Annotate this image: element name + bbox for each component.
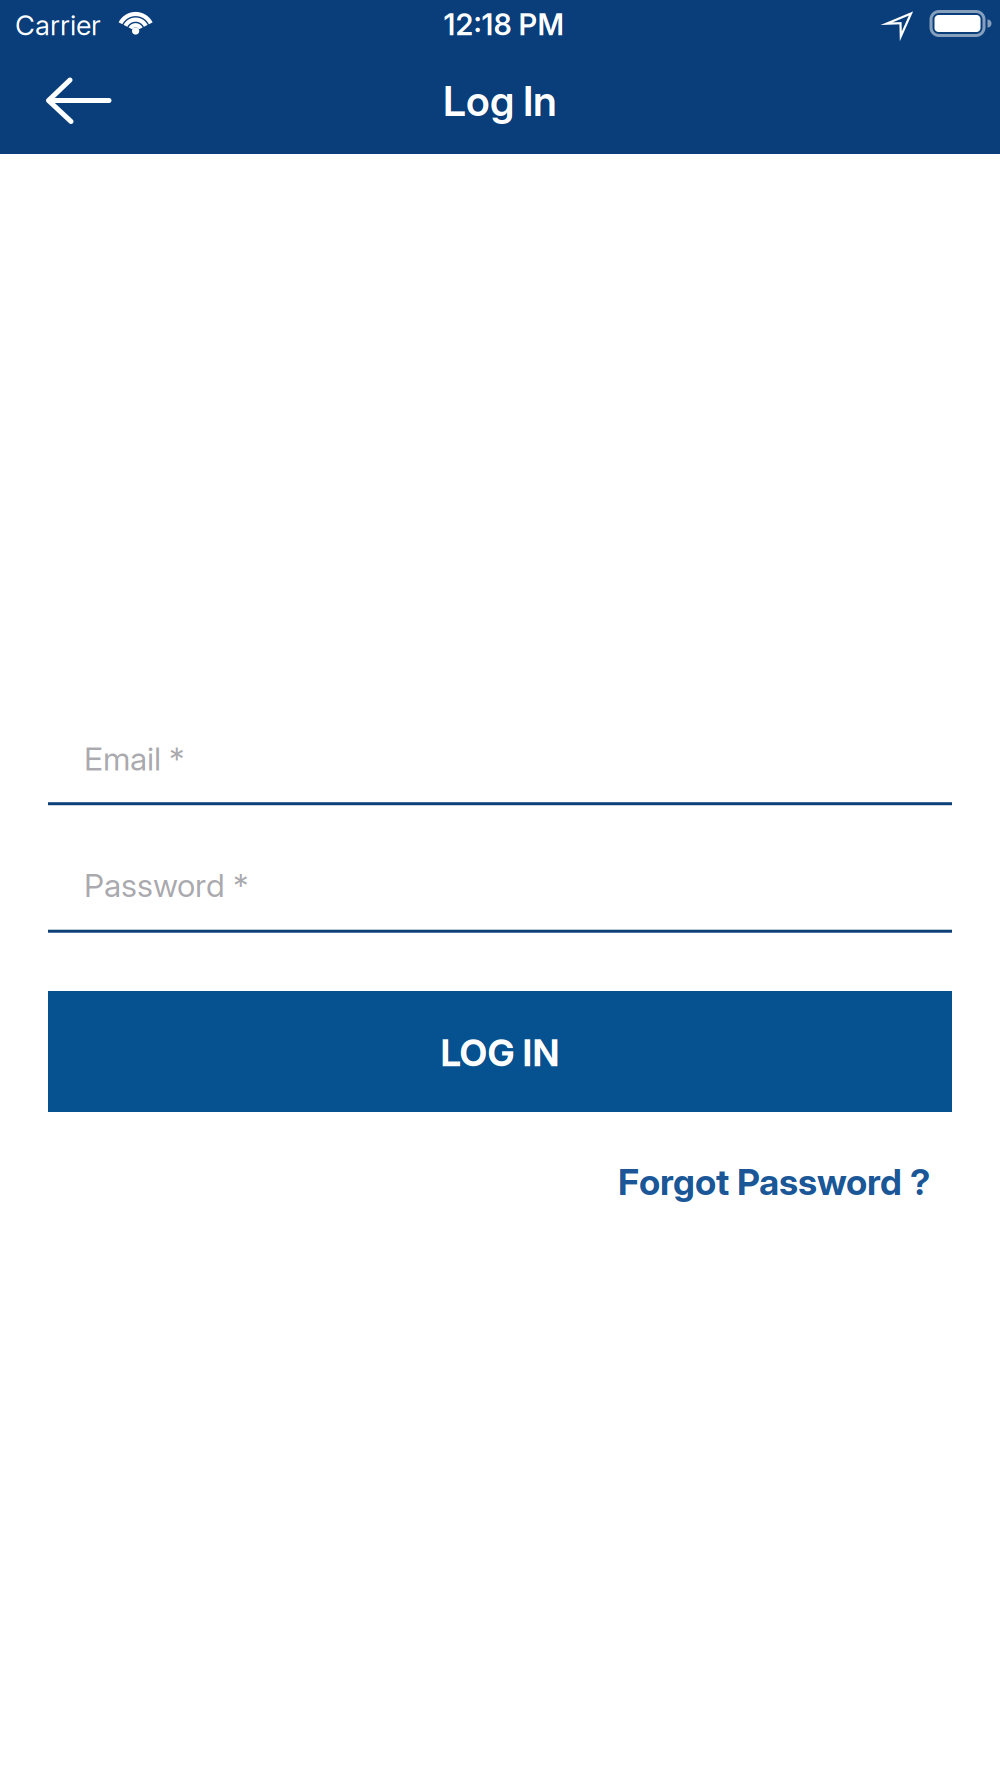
staticText: 12:18 PM bbox=[443, 7, 564, 42]
staticText: LOG IN bbox=[440, 1031, 559, 1075]
button[interactable]: Email * bbox=[48, 739, 952, 805]
button[interactable] bbox=[42, 73, 112, 129]
staticText: Password * bbox=[84, 866, 248, 905]
staticText: Email * bbox=[84, 739, 184, 778]
button[interactable]: Password * bbox=[48, 866, 952, 933]
staticText: Log In bbox=[443, 76, 557, 126]
button[interactable]: Forgot Password ? bbox=[618, 1160, 930, 1204]
staticText: Carrier bbox=[15, 9, 101, 42]
staticText: Forgot Password ? bbox=[618, 1160, 930, 1204]
button[interactable]: LOG IN bbox=[48, 991, 952, 1112]
